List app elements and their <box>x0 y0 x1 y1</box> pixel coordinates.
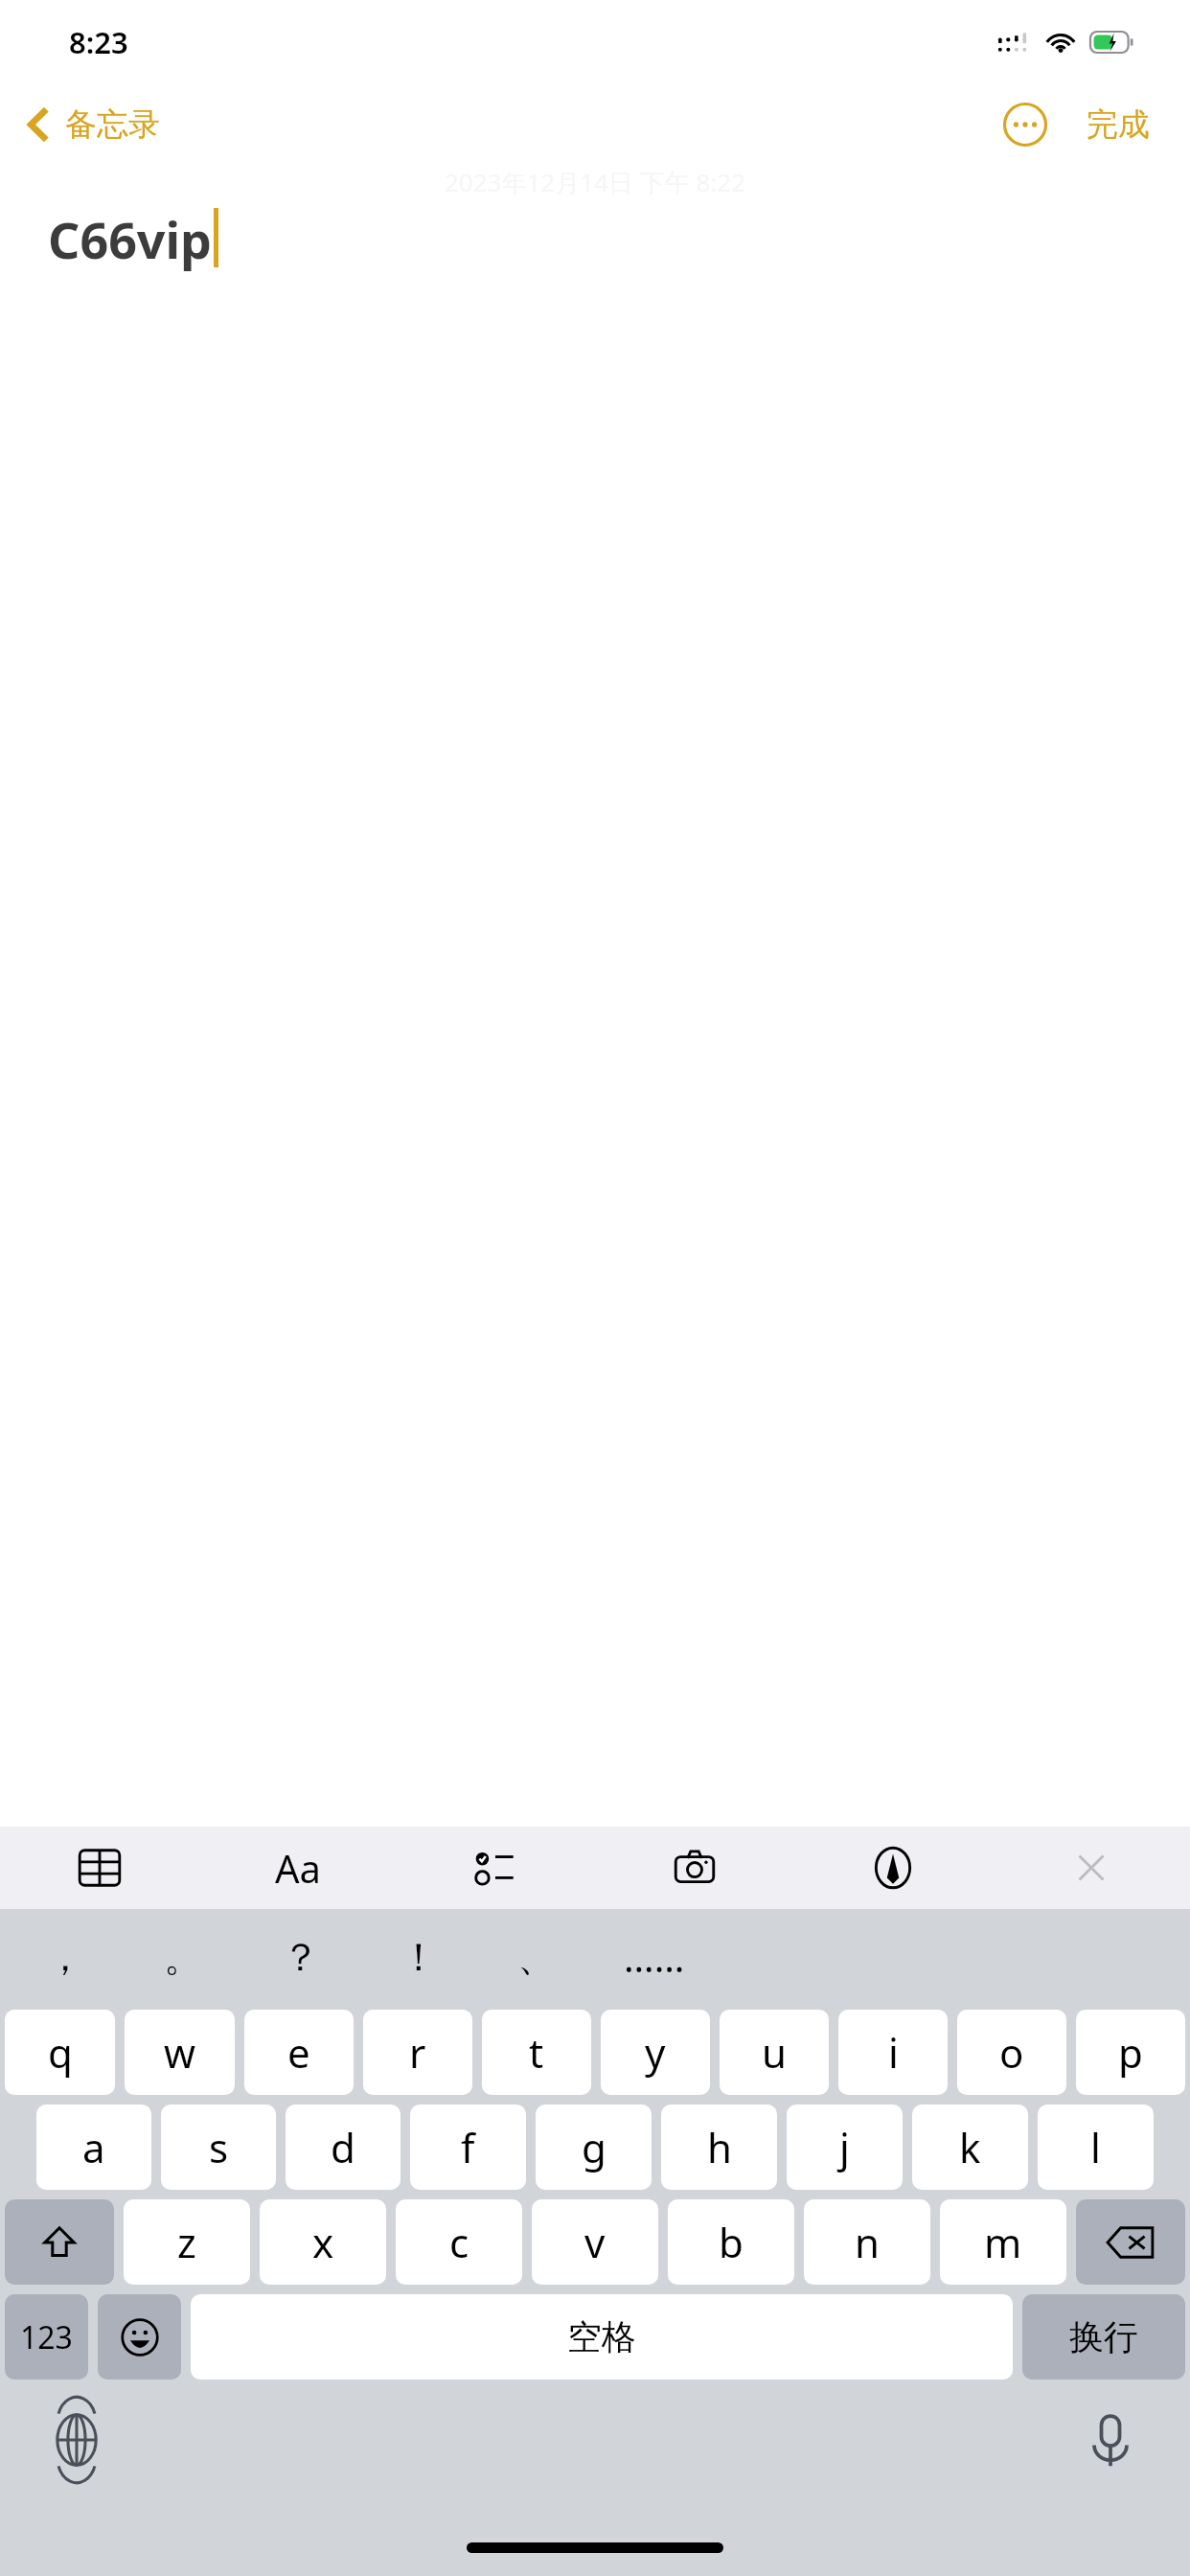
button[interactable]: Checklist <box>397 1827 595 1909</box>
staticText: m <box>984 2215 1022 2269</box>
staticText: 备忘录 <box>65 104 160 145</box>
button[interactable]: Dictation <box>1075 2402 1146 2482</box>
staticText: 。 <box>164 1933 202 1981</box>
staticText: 123 <box>20 2316 73 2358</box>
button[interactable]: v <box>532 2199 658 2285</box>
button[interactable]: Emoji <box>98 2294 181 2380</box>
button[interactable]: Backspace <box>1076 2199 1185 2285</box>
staticText: ， <box>46 1933 84 1981</box>
button[interactable]: t <box>482 2010 591 2095</box>
staticText: z <box>177 2215 196 2269</box>
button[interactable]: 、 <box>477 1909 595 2005</box>
button[interactable]: f <box>410 2104 526 2190</box>
staticText: y <box>645 2025 666 2080</box>
staticText: 2023年12月14日 下午 8:22 <box>445 165 746 199</box>
staticText: 换行 <box>1069 2315 1138 2358</box>
button[interactable]: Close <box>992 1827 1190 1909</box>
button[interactable]: Table <box>0 1827 198 1909</box>
button[interactable]: s <box>161 2104 276 2190</box>
staticText: c <box>449 2215 469 2269</box>
button[interactable]: Camera <box>595 1827 793 1909</box>
button[interactable]: c <box>396 2199 522 2285</box>
staticText: p <box>1118 2025 1143 2080</box>
button[interactable]: z <box>124 2199 250 2285</box>
button[interactable]: q <box>5 2010 115 2095</box>
staticText: 8:23 <box>69 22 128 62</box>
button[interactable]: g <box>536 2104 652 2190</box>
button[interactable]: d <box>286 2104 400 2190</box>
button[interactable]: j <box>787 2104 903 2190</box>
staticText: 、 <box>517 1933 556 1981</box>
staticText: t <box>529 2025 544 2080</box>
button[interactable]: u <box>720 2010 829 2095</box>
staticText: o <box>999 2025 1024 2080</box>
button[interactable]: …… <box>595 1909 713 2005</box>
button[interactable]: a <box>36 2104 151 2190</box>
staticText: k <box>959 2120 981 2174</box>
button[interactable]: Format text <box>198 1827 397 1909</box>
staticText: r <box>409 2025 426 2080</box>
button[interactable]: y <box>601 2010 710 2095</box>
staticText: 空格 <box>567 2315 636 2358</box>
staticText: f <box>461 2120 475 2174</box>
staticText: …… <box>624 1931 685 1983</box>
button[interactable]: x <box>260 2199 386 2285</box>
button[interactable]: Switch keyboard <box>38 2402 115 2478</box>
staticText: n <box>855 2215 880 2269</box>
button[interactable]: b <box>668 2199 794 2285</box>
button[interactable]: Markup <box>793 1827 992 1909</box>
staticText: a <box>82 2120 105 2174</box>
button[interactable]: l <box>1038 2104 1154 2190</box>
button[interactable]: More options <box>993 92 1058 157</box>
staticText: q <box>48 2025 73 2080</box>
staticText: ！ <box>400 1933 438 1981</box>
staticText: C66vip <box>48 205 212 273</box>
staticText: h <box>707 2120 732 2174</box>
staticText: 完成 <box>1087 104 1150 145</box>
button[interactable]: ， <box>6 1909 124 2005</box>
button[interactable]: w <box>125 2010 235 2095</box>
staticText: w <box>164 2025 196 2080</box>
button[interactable]: 123 <box>5 2294 88 2380</box>
button[interactable]: 备忘录 <box>0 97 175 152</box>
button[interactable]: 空格 <box>191 2294 1013 2380</box>
staticText: j <box>839 2120 850 2174</box>
staticText: v <box>584 2215 606 2269</box>
staticText: Aa <box>275 1842 321 1894</box>
staticText: b <box>719 2215 744 2269</box>
staticText: i <box>888 2025 899 2080</box>
button[interactable]: i <box>838 2010 948 2095</box>
staticText: g <box>582 2120 606 2174</box>
button[interactable]: k <box>912 2104 1028 2190</box>
button[interactable]: o <box>957 2010 1066 2095</box>
staticText: ？ <box>282 1933 320 1981</box>
staticText: d <box>331 2120 355 2174</box>
button[interactable]: Shift <box>5 2199 114 2285</box>
button[interactable]: 完成 <box>1081 95 1156 154</box>
staticText: x <box>312 2215 334 2269</box>
button[interactable]: ！ <box>359 1909 477 2005</box>
staticText: u <box>762 2025 787 2080</box>
button[interactable]: 。 <box>124 1909 241 2005</box>
staticText: e <box>287 2025 310 2080</box>
button[interactable]: p <box>1076 2010 1185 2095</box>
button[interactable]: r <box>363 2010 472 2095</box>
button[interactable]: h <box>661 2104 777 2190</box>
button[interactable]: n <box>804 2199 930 2285</box>
button[interactable]: 换行 <box>1022 2294 1185 2380</box>
button[interactable]: ？ <box>241 1909 359 2005</box>
staticText: l <box>1090 2120 1101 2174</box>
button[interactable]: m <box>940 2199 1066 2285</box>
button[interactable]: e <box>244 2010 354 2095</box>
staticText: s <box>209 2120 229 2174</box>
